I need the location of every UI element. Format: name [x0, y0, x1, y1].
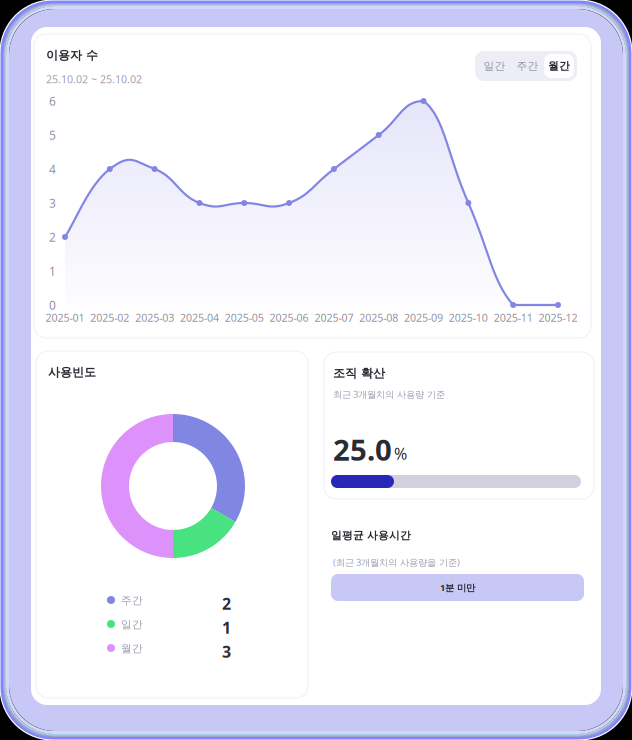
- button[interactable]: 월간: [544, 54, 574, 78]
- staticText: 5: [49, 127, 56, 143]
- staticText: 조직 확산: [333, 366, 385, 381]
- staticText: 2025-07: [314, 310, 353, 325]
- staticText: 2: [222, 593, 231, 614]
- staticText: 3: [49, 195, 56, 211]
- staticText: 6: [49, 93, 56, 109]
- button[interactable]: 1분 미만: [331, 574, 584, 601]
- staticText: 3: [222, 641, 231, 662]
- staticText: 1: [222, 617, 231, 638]
- staticText: 월간: [548, 59, 570, 72]
- staticText: 2025-01: [45, 310, 84, 325]
- staticText: 2025-04: [180, 310, 219, 325]
- staticText: 2025-06: [270, 310, 309, 325]
- staticText: 2025-02: [90, 310, 129, 325]
- staticText: 2025-10: [449, 310, 488, 325]
- staticText: (최근 3개월치의 사용량을 기준): [333, 556, 460, 568]
- staticText: 일평균 사용시간: [331, 529, 411, 542]
- button[interactable]: 주간: [511, 54, 544, 78]
- staticText: 2025-03: [135, 310, 174, 325]
- staticText: 0: [49, 297, 56, 313]
- staticText: 최근 3개월치의 사용량 기준: [333, 388, 445, 400]
- staticText: 25.0: [333, 430, 392, 469]
- staticText: 1분 미만: [440, 581, 475, 594]
- staticText: 2025-08: [359, 310, 398, 325]
- staticText: 25.10.02 ~ 25.10.02: [46, 72, 142, 86]
- button[interactable]: 일간: [478, 54, 511, 78]
- staticText: 이용자 수: [46, 48, 98, 63]
- staticText: 월간: [121, 642, 143, 655]
- staticText: %: [394, 443, 407, 464]
- staticText: 1: [49, 263, 56, 279]
- staticText: 일간: [483, 59, 505, 72]
- staticText: 주간: [121, 594, 143, 607]
- staticText: 일간: [121, 618, 143, 631]
- staticText: 2025-12: [538, 310, 577, 325]
- staticText: 주간: [516, 59, 538, 72]
- staticText: 사용빈도: [48, 365, 96, 380]
- staticText: 2: [49, 229, 56, 245]
- staticText: 2025-11: [494, 310, 533, 325]
- staticText: 2025-09: [404, 310, 443, 325]
- staticText: 2025-05: [225, 310, 264, 325]
- staticText: 4: [49, 161, 56, 177]
